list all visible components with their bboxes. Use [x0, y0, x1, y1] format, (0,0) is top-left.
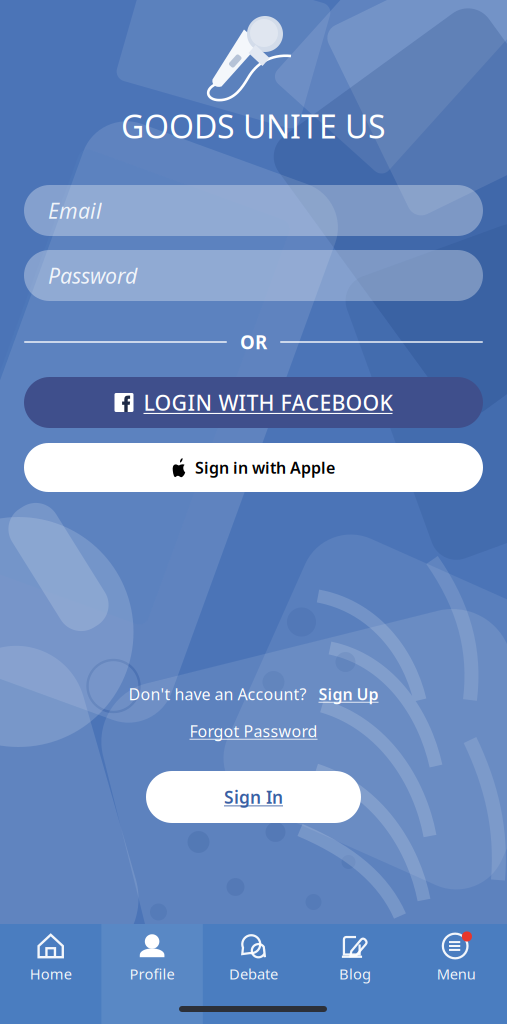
button[interactable]: Home [0, 924, 101, 1024]
button[interactable]: Sign Up [318, 683, 378, 705]
staticText: Sign In [224, 785, 283, 808]
button[interactable]: Forgot Password [0, 718, 507, 744]
button[interactable]: Sign in with Apple [24, 443, 483, 492]
button[interactable]: Blog [304, 924, 406, 1024]
staticText: Sign Up [318, 683, 378, 705]
staticText: Don't have an Account? [128, 683, 306, 705]
button[interactable]: LOGIN WITH FACEBOOK [24, 377, 483, 428]
staticText: LOGIN WITH FACEBOOK [143, 388, 392, 417]
staticText: GOODS UNITE US [121, 105, 386, 147]
button[interactable]: Profile [101, 924, 203, 1024]
button[interactable]: Debate [203, 924, 304, 1024]
staticText: Menu [437, 964, 476, 983]
button[interactable]: Sign In [146, 771, 361, 823]
staticText: OR [240, 330, 267, 354]
staticText: Profile [130, 964, 175, 983]
staticText: Forgot Password [189, 720, 317, 742]
staticText: Debate [229, 964, 278, 983]
staticText: Email [48, 196, 102, 225]
staticText: Password [48, 261, 137, 290]
staticText: Blog [339, 964, 371, 983]
staticText: Sign in with Apple [195, 457, 335, 478]
button[interactable]: Menu [406, 924, 507, 1024]
staticText: Home [30, 964, 72, 983]
